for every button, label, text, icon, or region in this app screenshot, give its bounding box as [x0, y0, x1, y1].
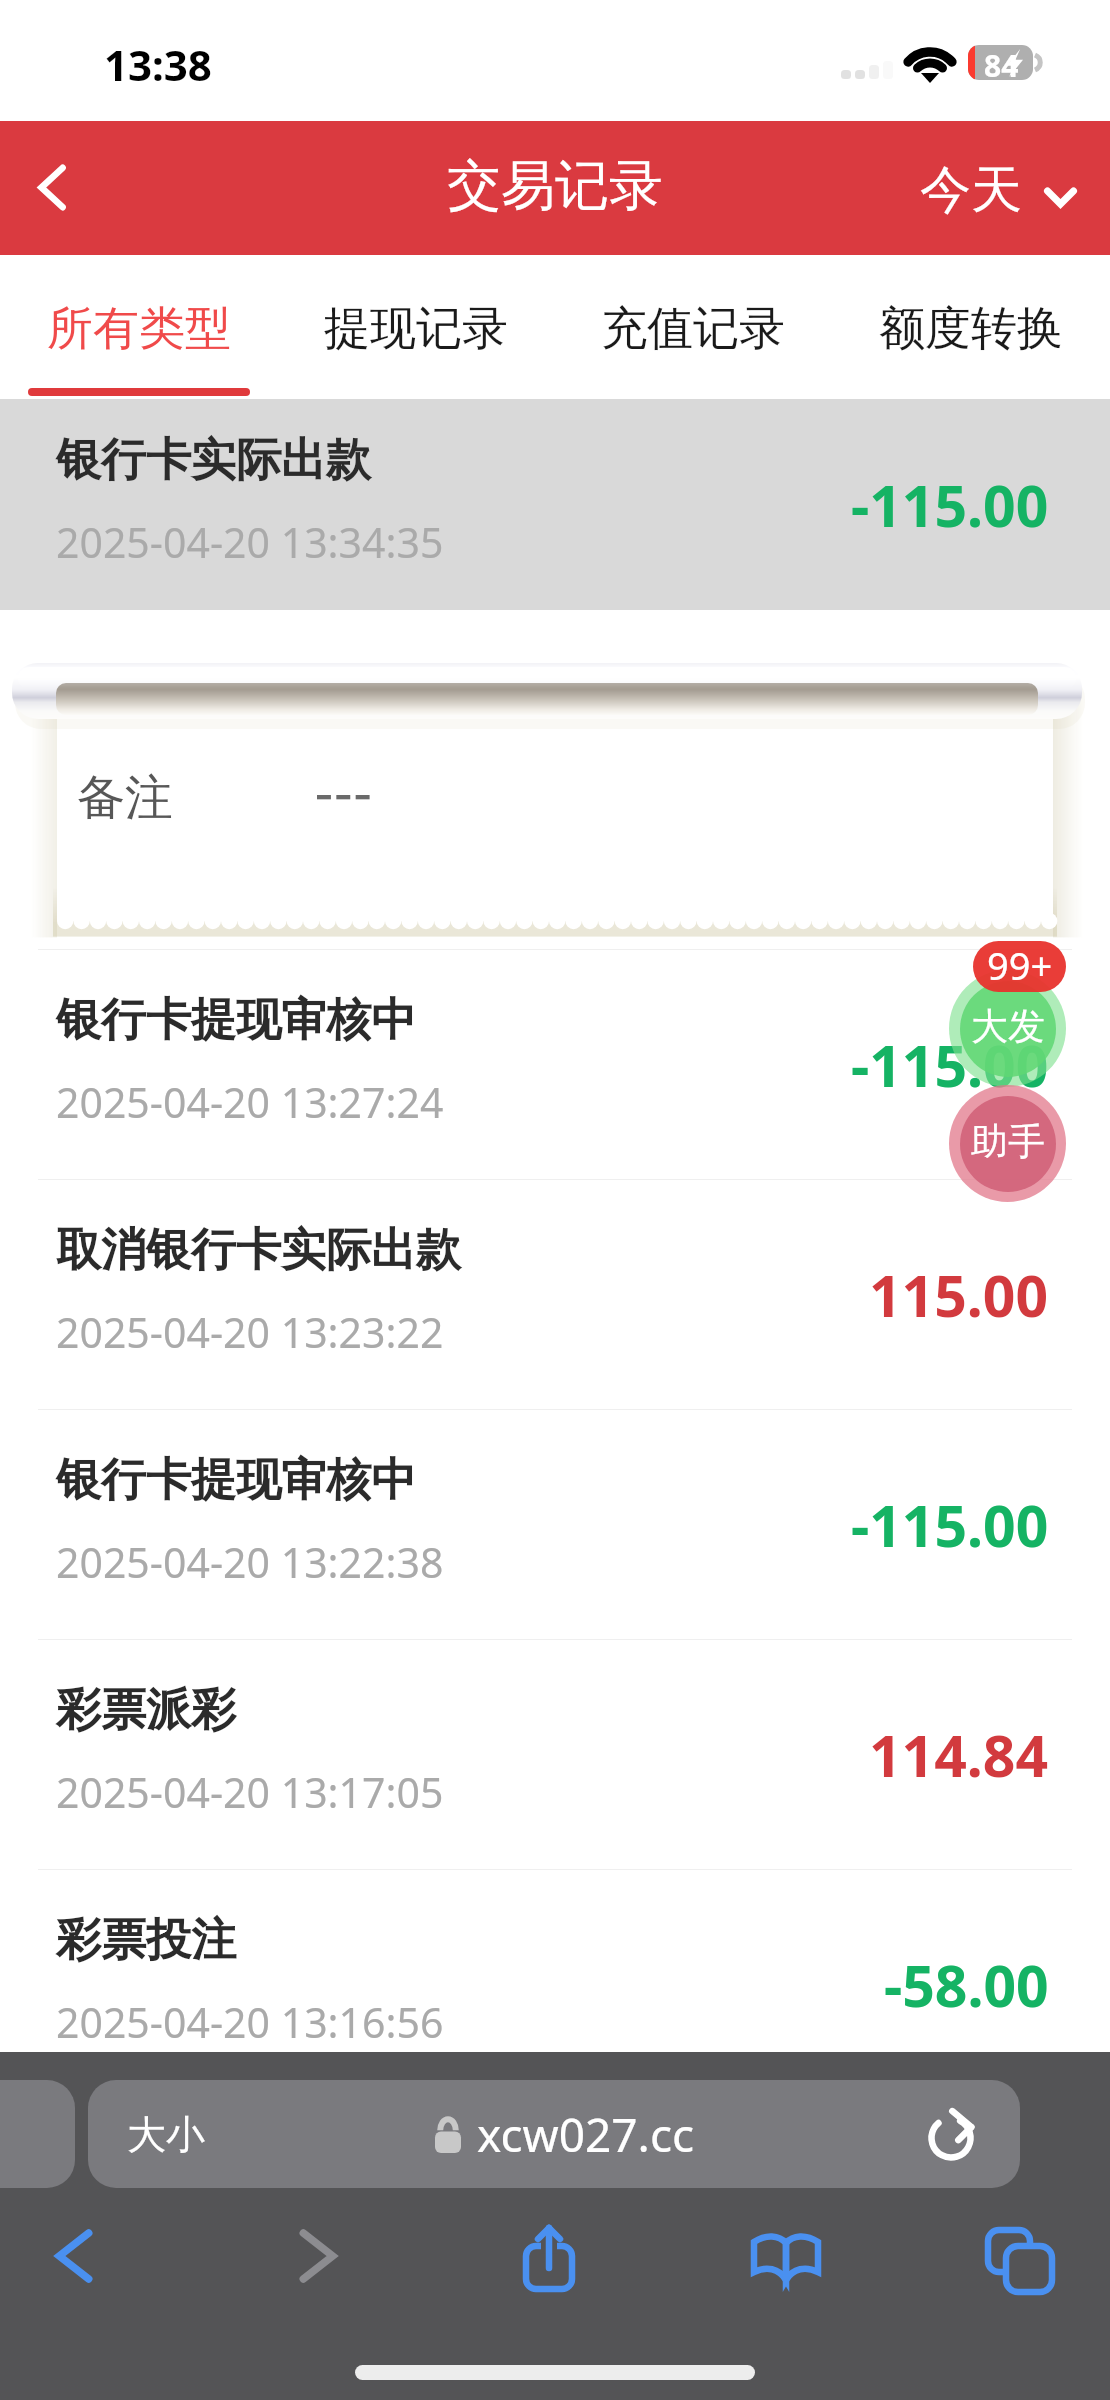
staticText: 2025-04-20 13:27:24 — [56, 1074, 444, 1130]
button[interactable]: 充值记录 — [554, 255, 832, 399]
staticText: 交易记录 — [447, 152, 663, 220]
button[interactable]: Forward — [272, 2210, 364, 2302]
staticText: 13:38 — [104, 36, 212, 93]
staticText: 2025-04-20 13:17:05 — [56, 1764, 444, 1820]
staticText: 115.00 — [869, 1256, 1049, 1334]
button[interactable]: 大发 — [949, 970, 1066, 1087]
button[interactable]: 银行卡实际出款 — [0, 399, 1110, 610]
staticText: 大发 — [971, 1003, 1045, 1050]
button[interactable]: Share — [503, 2211, 595, 2303]
staticText: 彩票投注 — [56, 1912, 236, 1969]
staticText: -115.00 — [851, 1026, 1049, 1104]
button[interactable]: Bookmarks — [740, 2211, 832, 2303]
staticText: 84 — [984, 45, 1019, 86]
staticText: 2025-04-20 13:34:35 — [56, 514, 444, 570]
staticText: 银行卡提现审核中 — [56, 1452, 416, 1509]
button[interactable]: 今天 — [920, 121, 1076, 255]
staticText: 彩票派彩 — [56, 1682, 236, 1739]
staticText: 99+ — [987, 941, 1053, 990]
staticText: -58.00 — [884, 1946, 1049, 2024]
button[interactable]: Back — [0, 121, 118, 255]
button[interactable]: Reload — [923, 2106, 979, 2162]
button[interactable]: 彩票投注 — [0, 1869, 1110, 2099]
button[interactable]: 助手 — [949, 1085, 1066, 1202]
staticText: xcw027.cc — [477, 2103, 695, 2166]
staticText: -115.00 — [851, 1486, 1049, 1564]
button[interactable]: 银行卡提现审核中 — [0, 949, 1110, 1179]
button[interactable]: 大小 — [88, 2080, 1020, 2188]
staticText: 助手 — [971, 1118, 1045, 1165]
staticText: 2025-04-20 13:22:38 — [56, 1534, 444, 1590]
staticText: 所有类型 — [47, 300, 231, 358]
staticText: 今天 — [920, 158, 1022, 222]
staticText: 取消银行卡实际出款 — [56, 1222, 461, 1279]
button[interactable]: Back — [28, 2210, 120, 2302]
button[interactable]: Previous tab — [0, 2080, 75, 2188]
staticText: 2025-04-20 13:23:22 — [56, 1304, 444, 1360]
staticText: 114.84 — [869, 1716, 1049, 1794]
staticText: 银行卡实际出款 — [56, 432, 371, 489]
staticText: 充值记录 — [601, 300, 785, 358]
staticText: 提现记录 — [324, 300, 508, 358]
staticText: 银行卡提现审核中 — [56, 992, 416, 1049]
staticText: 备注 — [77, 768, 173, 828]
button[interactable]: 所有类型 — [0, 255, 277, 399]
staticText: 额度转换 — [879, 300, 1063, 358]
button[interactable]: 提现记录 — [277, 255, 554, 399]
button[interactable]: Tabs — [974, 2211, 1066, 2303]
button[interactable]: 取消银行卡实际出款 — [0, 1179, 1110, 1409]
staticText: 2025-04-20 13:16:56 — [56, 1994, 444, 2050]
button[interactable]: 银行卡提现审核中 — [0, 1409, 1110, 1639]
staticText: 大小 — [127, 2110, 205, 2159]
button[interactable]: 彩票派彩 — [0, 1639, 1110, 1869]
staticText: -115.00 — [851, 466, 1049, 544]
button[interactable]: 额度转换 — [832, 255, 1110, 399]
